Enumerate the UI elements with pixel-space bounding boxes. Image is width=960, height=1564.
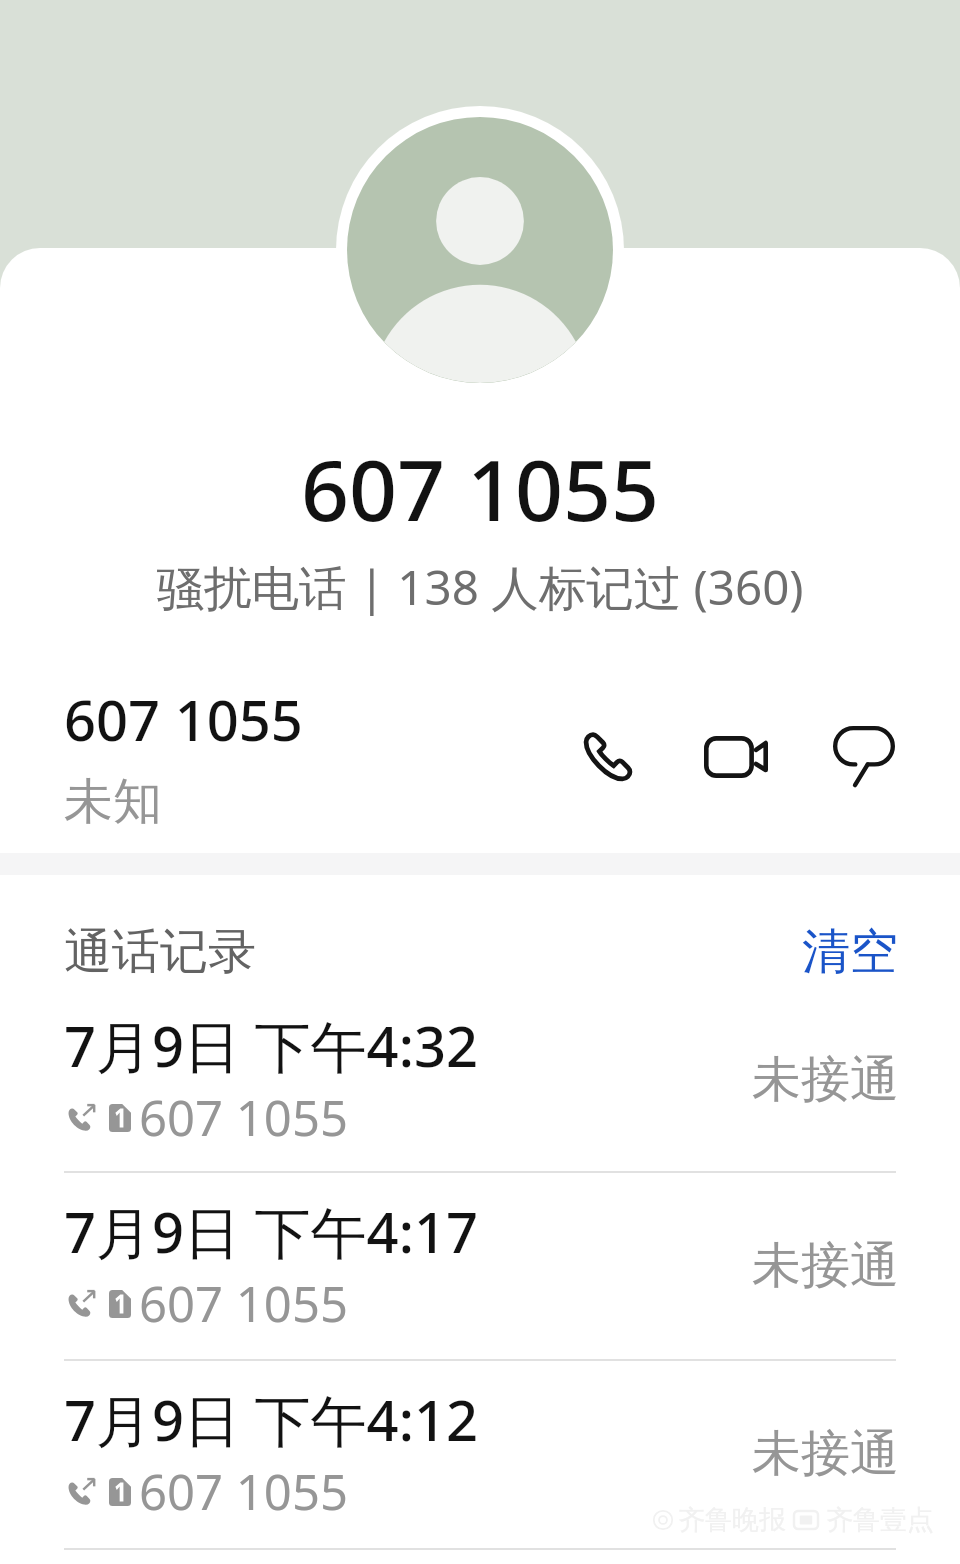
staticText: 未接通 xyxy=(752,1235,899,1297)
staticText: 齐鲁壹点 xyxy=(826,1503,934,1537)
staticText: 骚扰电话 | 138 人标记过 (360) xyxy=(0,554,960,619)
staticText: 清空 xyxy=(802,922,898,982)
staticText: 607 1055 xyxy=(64,681,303,757)
button[interactable]: Call xyxy=(562,711,654,803)
button[interactable]: Message xyxy=(818,711,910,803)
staticText: 7月9日 下午4:17 xyxy=(64,1193,478,1269)
staticText: 607 1055 xyxy=(139,1458,348,1525)
staticText: 7月9日 下午4:12 xyxy=(64,1381,478,1457)
staticText: 未接通 xyxy=(752,1423,899,1485)
staticText: 通话记录 xyxy=(64,922,256,982)
staticText: 7月9日 下午4:32 xyxy=(64,1007,478,1083)
button[interactable]: Video call xyxy=(690,711,782,803)
staticText: 607 1055 xyxy=(139,1084,348,1151)
button[interactable]: 通话记录 xyxy=(64,922,256,982)
staticText: 未知 xyxy=(64,771,162,833)
button[interactable] xyxy=(0,1163,960,1343)
button[interactable] xyxy=(0,1351,960,1531)
button[interactable]: 清空 xyxy=(802,922,898,982)
button[interactable] xyxy=(0,977,960,1157)
staticText: 607 1055 xyxy=(139,1270,348,1337)
staticText: 齐鲁晚报 xyxy=(678,1503,786,1537)
staticText: 未接通 xyxy=(752,1049,899,1111)
staticText: 607 1055 xyxy=(0,431,960,545)
